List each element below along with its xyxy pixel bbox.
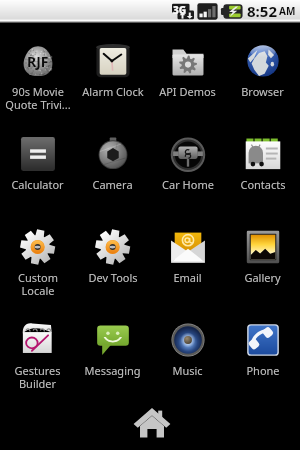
button[interactable]: Car Home bbox=[150, 116, 225, 209]
button[interactable]: Messaging bbox=[75, 302, 150, 395]
button[interactable]: Contacts bbox=[225, 116, 300, 209]
staticText: API Demos bbox=[159, 84, 216, 99]
button[interactable]: Music bbox=[150, 302, 225, 395]
button[interactable]: Camera bbox=[75, 116, 150, 209]
staticText: Messaging bbox=[84, 363, 141, 378]
staticText: RJF bbox=[27, 52, 49, 71]
button[interactable]: Dev Tools bbox=[75, 209, 150, 302]
staticText: 8:52 bbox=[247, 1, 277, 21]
staticText: Calculator bbox=[11, 177, 64, 192]
staticText: Custom Locale bbox=[18, 270, 58, 298]
staticText: Browser bbox=[241, 84, 284, 99]
staticText: AM bbox=[279, 4, 296, 18]
button[interactable]: Phone bbox=[225, 302, 300, 395]
staticText: 3G bbox=[173, 3, 187, 17]
button[interactable]: Email bbox=[150, 209, 225, 302]
staticText: 90s Movie Quote Trivi... bbox=[5, 84, 71, 112]
button[interactable]: Home bbox=[132, 402, 172, 443]
staticText: Camera bbox=[92, 177, 133, 192]
button[interactable]: Alarm Clock bbox=[75, 23, 150, 116]
staticText: Alarm Clock bbox=[82, 84, 144, 99]
staticText: Car Home bbox=[162, 177, 214, 192]
staticText: Phone bbox=[246, 363, 280, 378]
button[interactable]: API Demos bbox=[150, 23, 225, 116]
staticText: Gestures Builder bbox=[14, 363, 61, 391]
staticText: Dev Tools bbox=[88, 270, 138, 285]
button[interactable]: RJF bbox=[0, 23, 75, 116]
button[interactable]: Calculator bbox=[0, 116, 75, 209]
button[interactable]: Gestures Builder bbox=[0, 302, 75, 395]
staticText: Contacts bbox=[240, 177, 286, 192]
button[interactable]: Browser bbox=[225, 23, 300, 116]
button[interactable]: Gallery bbox=[225, 209, 300, 302]
staticText: Music bbox=[172, 363, 203, 378]
staticText: Gallery bbox=[244, 270, 281, 285]
button[interactable]: Custom Locale bbox=[0, 209, 75, 302]
staticText: Email bbox=[173, 270, 202, 285]
